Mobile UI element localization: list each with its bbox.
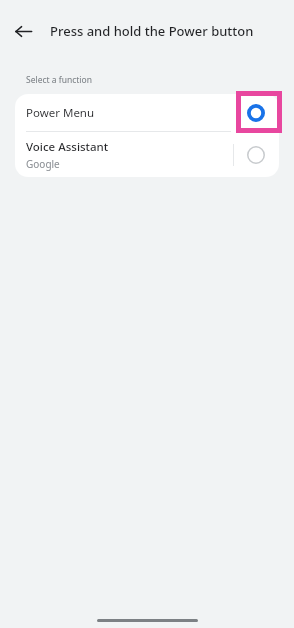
button[interactable]: Power Menu [15, 94, 279, 131]
staticText: Google [26, 157, 60, 171]
other: Power Menu selected [236, 91, 282, 133]
button[interactable]: Voice Assistant [15, 132, 279, 177]
staticText: Select a function [26, 74, 92, 86]
staticText: Press and hold the Power button [50, 22, 254, 40]
button[interactable]: Back [6, 14, 40, 48]
staticText: Power Menu [26, 105, 95, 121]
staticText: Voice Assistant [26, 139, 109, 155]
